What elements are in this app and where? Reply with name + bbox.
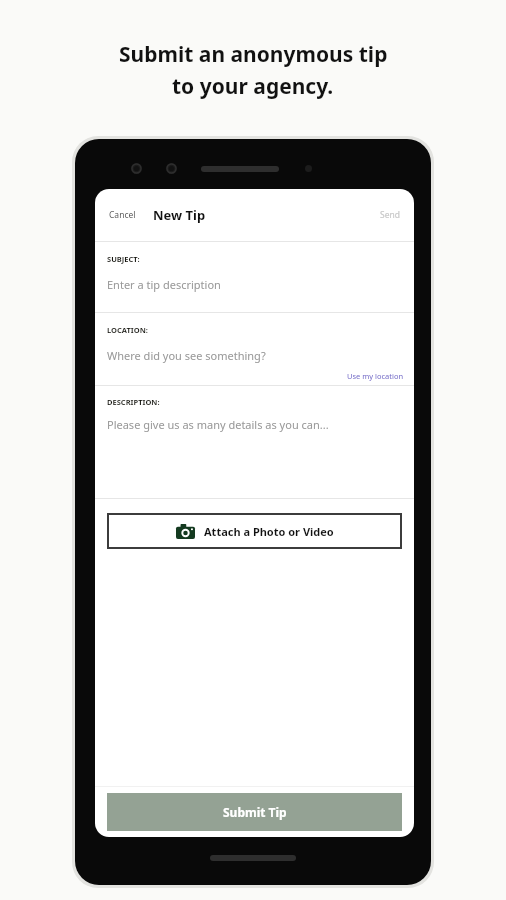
button[interactable]: LOCATION:: [95, 313, 414, 385]
button[interactable]: DESCRIPTION:: [95, 386, 414, 498]
staticText: Send: [380, 209, 400, 221]
button[interactable]: Attach a photo or video: [107, 513, 402, 549]
staticText: New Tip: [153, 206, 206, 224]
staticText: Submit Tip: [223, 804, 287, 820]
staticText: Attach a Photo or Video: [204, 524, 334, 539]
button[interactable]: Send: [370, 201, 414, 229]
staticText: SUBJECT:: [107, 254, 140, 264]
other: Attach a photo or video: [176, 524, 195, 539]
button[interactable]: Use my location: [339, 367, 414, 385]
staticText: to your agency.: [172, 72, 334, 101]
staticText: Submit an anonymous tip: [119, 40, 388, 69]
button[interactable]: Submit Tip: [107, 793, 402, 831]
staticText: Please give us as many details as you ca…: [107, 417, 329, 432]
staticText: LOCATION:: [107, 325, 148, 335]
staticText: Where did you see something?: [107, 348, 266, 363]
staticText: Enter a tip description: [107, 277, 221, 292]
button[interactable]: Cancel: [95, 201, 146, 229]
staticText: Use my location: [347, 371, 404, 381]
button[interactable]: SUBJECT:: [95, 242, 414, 312]
staticText: Cancel: [109, 209, 136, 221]
staticText: DESCRIPTION:: [107, 397, 160, 407]
